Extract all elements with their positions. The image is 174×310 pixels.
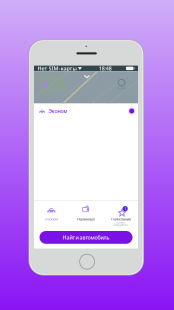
button[interactable]: Эконом xyxy=(34,204,69,234)
button[interactable]: Войти xyxy=(113,78,130,91)
staticText: 1 xyxy=(124,206,126,211)
staticText: Нет SIM-карты xyxy=(37,65,76,72)
staticText: Время xyxy=(116,221,125,224)
staticText: Эконом xyxy=(48,107,67,115)
button[interactable]: Наличные xyxy=(69,204,103,234)
staticText: Пожелания xyxy=(111,216,131,222)
staticText: ожидания xyxy=(113,223,128,227)
staticText: Эконом xyxy=(44,216,58,222)
staticText: Наличные xyxy=(77,216,95,222)
staticText: Найти автомобиль xyxy=(62,234,109,241)
button[interactable]: Эконом xyxy=(34,104,138,118)
staticText: 18:48 xyxy=(99,65,112,72)
button[interactable]: 1 xyxy=(103,204,138,234)
button[interactable]: Найти автомобиль xyxy=(39,231,132,244)
button[interactable]: Menu xyxy=(38,78,51,91)
